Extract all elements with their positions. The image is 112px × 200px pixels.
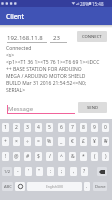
button[interactable]: ^ [58,152,65,161]
button[interactable]: % [46,137,53,146]
staticText: Message [8,105,34,113]
button[interactable]: ABC [2,182,13,191]
staticText: . [86,183,88,190]
staticText: ¥ [93,138,96,145]
staticText: 28% [80,1,89,7]
staticText: 1/2 [4,169,11,174]
button[interactable]: Delete [97,167,107,176]
button[interactable]: = [35,137,42,146]
button[interactable]: ¥ [91,137,98,146]
button[interactable]: 7 [69,123,76,132]
button[interactable]: 9 [91,123,98,132]
button[interactable]: * [80,152,87,161]
button[interactable]: ) [102,152,109,161]
button[interactable]: 2 [13,123,20,132]
staticText: / [49,153,51,160]
staticText: _ [60,138,63,145]
button[interactable]: . [84,182,90,191]
button[interactable]: ? [81,167,88,176]
staticText: SEND [87,105,98,111]
staticText: 9 [93,124,96,131]
staticText: # [26,153,30,160]
button[interactable]: 8 [80,123,87,132]
button[interactable]: ! [2,152,9,161]
staticText: ( [94,153,96,160]
staticText: ++ BASE STATION FOR ARDUINO [6,66,82,73]
staticText: ^ [60,153,63,160]
button[interactable]: CONNECT [77,31,107,42]
staticText: Client [6,12,24,21]
staticText: ₩ [104,138,108,145]
staticText: $ [37,153,40,160]
button[interactable]: $ [35,152,42,161]
staticText: & [71,153,75,160]
button[interactable]: & [69,152,76,161]
staticText: : [50,168,52,175]
staticText: Connected [6,45,32,52]
button[interactable]: , [70,167,77,176]
staticText: % [47,138,52,145]
staticText: × [15,138,18,145]
staticText: 5 [48,124,51,131]
staticText: " [38,168,41,175]
button[interactable]: ( [91,152,98,161]
button[interactable]: ; [58,167,65,176]
staticText: ? [83,168,86,175]
button[interactable]: × [13,137,20,146]
staticText: , [73,168,75,175]
staticText: + [4,138,7,145]
button[interactable]: + [2,137,9,146]
staticText: 6 [60,124,63,131]
staticText: - [17,168,19,175]
button[interactable]: 6 [58,123,65,132]
button[interactable]: ₩ [102,137,109,146]
staticText: = [37,138,40,145]
staticText: 0 [104,124,107,131]
staticText: £ [82,138,85,145]
staticText: <s> [6,52,15,59]
button[interactable]: £ [80,137,87,146]
button[interactable]: 1 [2,123,9,132]
button[interactable]: 4 [35,123,42,132]
staticText: 8 [82,124,85,131]
button[interactable]: # [24,152,31,161]
staticText: ÷ [26,138,29,145]
staticText: ) [105,153,107,160]
staticText: ; [61,168,63,175]
button[interactable]: SEND [78,102,107,113]
staticText: Done [95,184,106,190]
staticText: 15:48 [92,1,104,7]
staticText: <p1><T1 36 1><T5 76 1><T6 69 1><iDCC [6,59,100,66]
staticText: 192.168.11.8 [7,34,43,42]
staticText: 1 [4,124,7,131]
button[interactable]: Emoji [15,182,25,191]
staticText: @ [14,153,19,160]
button[interactable]: _ [58,137,65,146]
button[interactable]: @ [13,152,20,161]
staticText: 7 [71,124,74,131]
button[interactable]: ÷ [24,137,31,146]
button[interactable]: 1/2 [2,167,12,176]
staticText: SERIAL> [6,87,26,94]
staticText: ' [28,168,30,175]
staticText: 3 [26,124,29,131]
button[interactable]: Done [93,182,107,191]
button[interactable]: € [69,137,76,146]
staticText: English(UK) [46,185,64,189]
staticText: CONNECT [82,34,102,40]
button[interactable]: 0 [102,123,109,132]
button[interactable]: - [14,167,21,176]
staticText: 4 [37,124,40,131]
staticText: ! [5,153,7,160]
button[interactable]: " [36,167,43,176]
staticText: ABC [4,184,12,189]
button[interactable]: English(UK) [27,182,82,191]
staticText: BUILD Mar 31 2016 21:54:52<=N0; [6,80,87,87]
staticText: 2 [15,124,18,131]
staticText: MEGA / ARDUINO MOTOR SHIELD [6,73,86,80]
button[interactable]: / [46,152,53,161]
button[interactable]: 3 [24,123,31,132]
button[interactable]: 5 [46,123,53,132]
button[interactable]: : [47,167,54,176]
button[interactable]: ' [25,167,32,176]
